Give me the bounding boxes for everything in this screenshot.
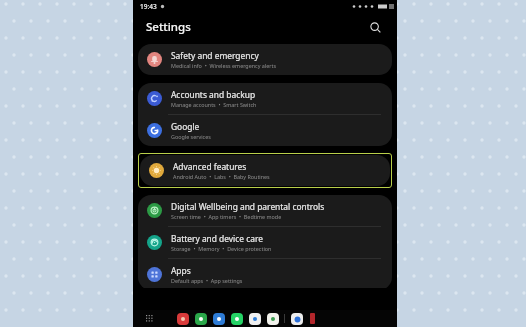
- staticText: Default apps • App settings: [171, 277, 243, 284]
- staticText: Storage • Memory • Device protection: [171, 245, 272, 252]
- button[interactable]: Safety and emergency: [138, 44, 392, 75]
- button[interactable]: Battery and device care: [138, 227, 392, 258]
- staticText: Apps: [171, 265, 191, 276]
- button[interactable]: Accounts and backup: [138, 83, 392, 114]
- staticText: Safety and emergency: [171, 50, 259, 61]
- button[interactable]: All apps: [143, 312, 156, 325]
- button[interactable]: Search: [365, 17, 385, 37]
- staticText: Medical info • Wireless emergency alerts: [171, 62, 276, 69]
- button[interactable]: Digital Wellbeing and parental controls: [138, 195, 392, 226]
- staticText: Manage accounts • Smart Switch: [171, 101, 257, 108]
- staticText: Accounts and backup: [171, 89, 256, 100]
- staticText: Screen time • App timers • Bedtime mode: [171, 213, 282, 220]
- staticText: Google: [171, 121, 200, 132]
- staticText: Battery and device care: [171, 233, 263, 244]
- button[interactable]: Apps: [138, 259, 392, 290]
- button[interactable]: [138, 298, 392, 318]
- button[interactable]: Messages: [177, 313, 189, 325]
- button[interactable]: Assistant: [267, 313, 279, 325]
- button[interactable]: Google: [138, 115, 392, 146]
- staticText: Digital Wellbeing and parental controls: [171, 201, 325, 212]
- button[interactable]: App: [310, 313, 315, 324]
- staticText: 19:43: [140, 2, 157, 11]
- button[interactable]: WhatsApp: [231, 313, 243, 325]
- button[interactable]: Contacts: [213, 313, 225, 325]
- staticText: Android Auto • Labs • Baby Routines: [173, 173, 270, 180]
- button[interactable]: Advanced features: [140, 155, 390, 186]
- staticText: Settings: [146, 19, 191, 35]
- staticText: Google services: [171, 133, 211, 140]
- button[interactable]: Chrome: [249, 313, 261, 325]
- staticText: Advanced features: [173, 161, 247, 172]
- button[interactable]: Samsung Internet: [291, 313, 303, 325]
- button[interactable]: Phone: [195, 313, 207, 325]
